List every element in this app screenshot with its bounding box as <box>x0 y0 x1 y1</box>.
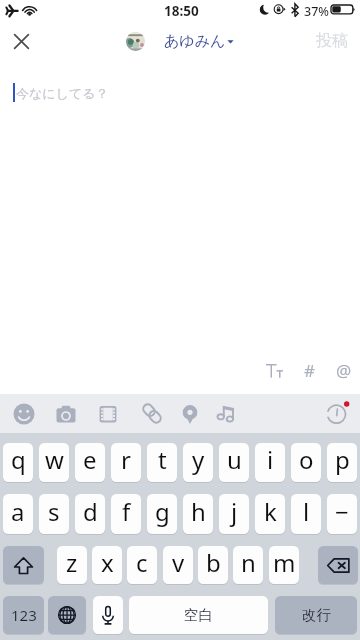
button[interactable]: u <box>219 443 249 482</box>
staticText: c <box>136 546 148 579</box>
staticText: あゆみん <box>164 32 226 51</box>
button[interactable]: a <box>3 494 33 534</box>
button[interactable]: Switch keyboard <box>48 596 86 634</box>
staticText: e <box>83 443 97 476</box>
staticText: p <box>335 443 350 476</box>
button[interactable]: v <box>163 546 193 584</box>
button[interactable]: − <box>327 494 357 534</box>
staticText: k <box>264 495 277 528</box>
staticText: w <box>45 443 64 476</box>
button[interactable]: d <box>75 494 105 534</box>
button[interactable]: n <box>233 546 263 584</box>
staticText: q <box>11 443 26 476</box>
button[interactable]: 改行 <box>275 596 357 634</box>
button[interactable]: x <box>92 546 122 584</box>
button[interactable]: Location <box>173 395 207 432</box>
button[interactable]: 投稿 <box>316 31 348 51</box>
staticText: a <box>11 495 25 528</box>
staticText: r <box>121 443 131 476</box>
button[interactable]: Hashtag <box>296 357 322 383</box>
button[interactable]: j <box>219 494 249 534</box>
button[interactable]: Close <box>9 29 34 54</box>
staticText: n <box>241 546 256 579</box>
staticText: 今なにしてる？ <box>16 85 109 101</box>
staticText: l <box>303 495 310 528</box>
button[interactable]: m <box>269 546 299 584</box>
staticText: # <box>304 359 315 382</box>
staticText: 37% <box>304 3 329 20</box>
button[interactable]: Music <box>211 395 245 432</box>
staticText: f <box>122 495 131 528</box>
staticText: t <box>158 443 167 476</box>
button[interactable]: Mention <box>331 357 357 383</box>
button[interactable]: s <box>39 494 69 534</box>
staticText: u <box>227 443 242 476</box>
button[interactable]: e <box>75 443 105 482</box>
button[interactable]: あゆみん <box>126 32 234 51</box>
staticText: 空白 <box>184 606 213 624</box>
staticText: m <box>273 546 296 579</box>
staticText: i <box>267 443 274 476</box>
staticText: 123 <box>11 605 37 625</box>
button[interactable]: Dictation <box>93 596 123 634</box>
staticText: h <box>191 495 206 528</box>
button[interactable]: w <box>39 443 69 482</box>
staticText: 18:50 <box>164 2 199 20</box>
staticText: 改行 <box>302 606 331 624</box>
button[interactable]: Backspace <box>318 546 358 584</box>
button[interactable]: b <box>198 546 228 584</box>
staticText: s <box>48 495 60 528</box>
button[interactable]: y <box>183 443 213 482</box>
button[interactable]: p <box>327 443 357 482</box>
staticText: 投稿 <box>316 31 348 51</box>
button[interactable]: Emoji <box>7 395 41 432</box>
staticText: @ <box>336 359 352 382</box>
button[interactable]: h <box>183 494 213 534</box>
button[interactable]: g <box>147 494 177 534</box>
button[interactable]: Link <box>135 395 169 432</box>
staticText: z <box>66 546 78 579</box>
button[interactable]: 空白 <box>129 596 268 634</box>
staticText: x <box>101 546 114 579</box>
button[interactable]: o <box>291 443 321 482</box>
staticText: v <box>172 546 185 579</box>
staticText: g <box>155 495 170 528</box>
staticText: d <box>83 495 98 528</box>
button[interactable]: Text formatting <box>261 357 287 383</box>
staticText: − <box>335 495 349 528</box>
button[interactable]: Video <box>91 395 125 432</box>
button[interactable]: 123 <box>3 596 44 634</box>
button[interactable]: z <box>57 546 87 584</box>
button[interactable]: Shift <box>3 546 44 584</box>
button[interactable]: i <box>255 443 285 482</box>
button[interactable]: c <box>127 546 157 584</box>
staticText: y <box>192 443 205 476</box>
staticText: j <box>231 495 238 528</box>
button[interactable]: q <box>3 443 33 482</box>
button[interactable]: Camera <box>49 395 83 432</box>
button[interactable]: t <box>147 443 177 482</box>
staticText: b <box>206 546 221 579</box>
button[interactable]: r <box>111 443 141 482</box>
button[interactable]: f <box>111 494 141 534</box>
button[interactable]: k <box>255 494 285 534</box>
button[interactable]: l <box>291 494 321 534</box>
button[interactable]: Schedule <box>320 395 354 432</box>
staticText: o <box>299 443 314 476</box>
